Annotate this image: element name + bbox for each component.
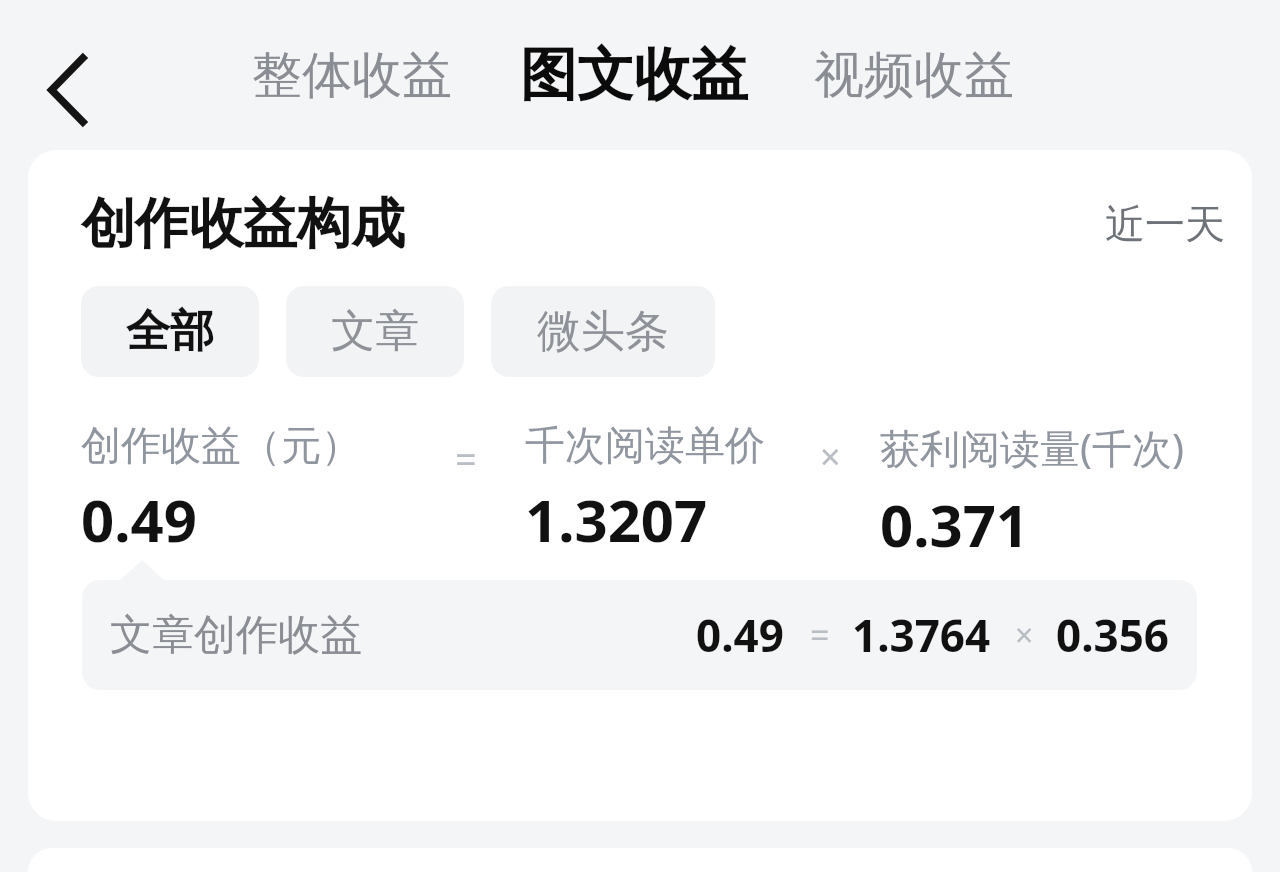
staticText: 1.3207	[525, 480, 708, 548]
button[interactable]: 文章创作收益	[82, 580, 1197, 690]
button[interactable]: Back	[30, 48, 110, 132]
staticText: ×	[1015, 613, 1034, 657]
staticText: 0.49	[696, 605, 784, 665]
staticText: 创作收益构成	[81, 190, 405, 258]
staticText: 1.3764	[852, 605, 991, 665]
staticText: 0.49	[81, 480, 197, 548]
button[interactable]: 整体收益	[252, 0, 452, 150]
staticText: 图文收益	[520, 39, 748, 111]
staticText: 千次阅读单价	[525, 420, 765, 470]
staticText: 0.356	[1056, 605, 1170, 665]
staticText: 创作收益（元）	[81, 420, 361, 470]
staticText: 0.371	[880, 485, 1030, 548]
staticText: 视频收益	[814, 44, 1014, 107]
button[interactable]: 文章	[286, 286, 464, 377]
button[interactable]: 微头条	[491, 286, 715, 377]
staticText: =	[810, 612, 830, 658]
staticText: 全部	[126, 304, 214, 359]
staticText: 整体收益	[252, 44, 452, 107]
staticText: ×	[820, 432, 841, 481]
staticText: 获利阅读量(千次)	[880, 420, 1184, 475]
button[interactable]: 视频收益	[814, 0, 1014, 150]
staticText: 近一天	[1105, 199, 1225, 249]
staticText: =	[455, 432, 477, 484]
button[interactable]: 全部	[81, 286, 259, 377]
staticText: 文章创作收益	[110, 609, 362, 662]
staticText: 文章	[331, 304, 419, 359]
staticText: 微头条	[537, 304, 669, 359]
button[interactable]: 近一天	[1105, 199, 1225, 249]
button[interactable]: 图文收益	[520, 0, 748, 150]
